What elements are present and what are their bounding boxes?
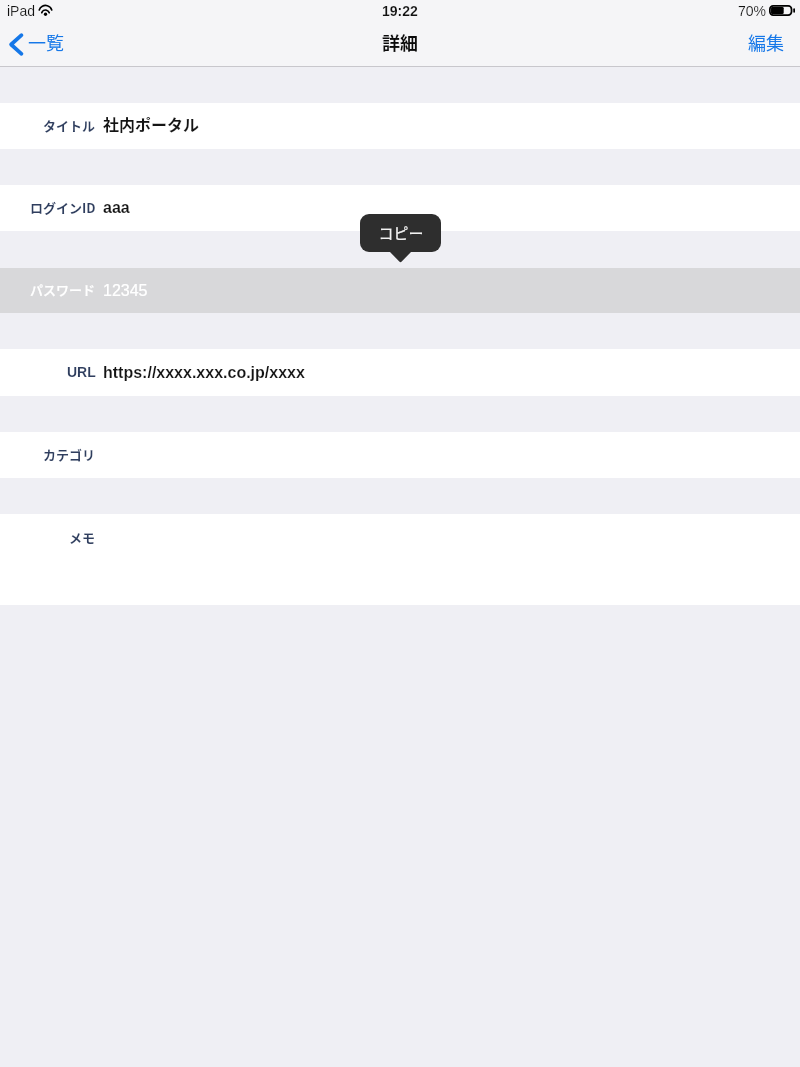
button[interactable]: コピー <box>360 214 441 252</box>
staticText: メモ <box>69 528 96 547</box>
staticText: iPad <box>7 3 36 19</box>
staticText: 70% <box>738 3 767 19</box>
staticText: 社内ポータル <box>103 112 200 135</box>
staticText: 編集 <box>748 29 784 55</box>
button[interactable]: カテゴリ <box>0 432 800 478</box>
staticText: 19:22 <box>382 3 418 19</box>
staticText: パスワード <box>30 280 96 299</box>
other: Battery 70 percent <box>769 5 795 16</box>
button[interactable]: Back to list <box>0 23 72 61</box>
staticText: コピー <box>378 222 424 244</box>
staticText: ログインID <box>30 198 96 217</box>
button[interactable]: メモ <box>0 514 800 605</box>
button[interactable]: URL <box>0 349 800 396</box>
staticText: aaa <box>103 199 130 217</box>
staticText: 12345 <box>103 282 148 300</box>
button[interactable]: 編集 <box>738 23 800 61</box>
staticText: 詳細 <box>382 29 418 55</box>
button[interactable]: パスワード <box>0 268 800 313</box>
other: Wi-Fi <box>39 5 52 16</box>
staticText: 一覧 <box>28 29 64 55</box>
staticText: URL <box>67 364 96 380</box>
staticText: タイトル <box>43 116 96 135</box>
staticText: https://xxxx.xxx.co.jp/xxxx <box>103 364 305 382</box>
button[interactable]: ログインID <box>0 185 800 231</box>
staticText: カテゴリ <box>43 445 96 464</box>
other: Back <box>9 34 22 55</box>
button[interactable]: タイトル <box>0 103 800 149</box>
